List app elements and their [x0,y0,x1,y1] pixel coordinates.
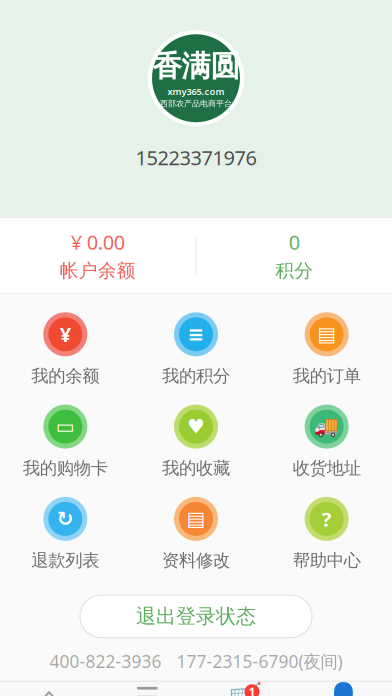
staticText: 帐户余额 [60,259,136,282]
staticText: ⌂ [40,682,58,696]
button[interactable]: 🚚 [261,405,392,479]
staticText: 🛒 [227,682,262,696]
button[interactable]: 🛒 [196,681,294,696]
staticText: 积分 [275,259,313,282]
button[interactable]: ↻ [0,497,131,571]
staticText: ▤ [317,323,336,346]
staticText: 我的订单 [293,365,361,387]
staticText: 400-822-3936 177-2315-6790(夜间) [49,650,342,673]
button[interactable]: 退出登录状态 [80,595,312,638]
staticText: 🚚 [314,415,339,438]
staticText: 退款列表 [31,550,99,571]
staticText: 收货地址 [293,458,361,479]
staticText: 我的收藏 [162,458,230,479]
button[interactable]: ¥ [0,312,131,387]
staticText: 15223371976 [135,144,256,171]
staticText: 退出登录状态 [136,604,256,629]
button[interactable]: ¥ 0.00 [0,217,195,294]
staticText: 我的购物卡 [23,458,108,479]
button[interactable]: ▤ [131,497,261,571]
button[interactable]: ▭ [0,405,131,479]
staticText: 帮助中心 [293,550,361,571]
staticText: xmy365.com [167,85,224,98]
staticText: ▭ [56,415,75,438]
staticText: ? [322,506,332,532]
staticText: ≡ [187,323,204,346]
staticText: 👤 [325,682,360,696]
staticText: 西部农产品电商平台 [160,98,232,108]
button[interactable]: ♥ [131,405,261,479]
button[interactable]: ▤ [261,312,392,387]
staticText: ▤ [186,507,205,530]
staticText: 资料修改 [162,550,230,571]
staticText: ¥ 0.00 [71,229,125,255]
staticText: ☰ [134,682,159,696]
button[interactable]: ⌂ [0,681,98,696]
button[interactable]: ≡ [131,312,261,387]
button[interactable]: ☰ [98,681,196,696]
staticText: 香满圆 [152,48,239,84]
staticText: ¥ [60,321,71,348]
staticText: 0 [289,229,300,255]
button[interactable]: 0 [196,217,392,294]
staticText: ↻ [57,507,74,530]
button[interactable]: 👤 [294,681,392,696]
staticText: 我的余额 [31,365,99,387]
button[interactable]: ? [261,497,392,571]
staticText: ♥ [187,415,205,438]
staticText: 1 [248,684,255,696]
button[interactable]: 400-822-3936 177-2315-6790(夜间) [49,650,342,673]
staticText: 我的积分 [162,365,230,387]
